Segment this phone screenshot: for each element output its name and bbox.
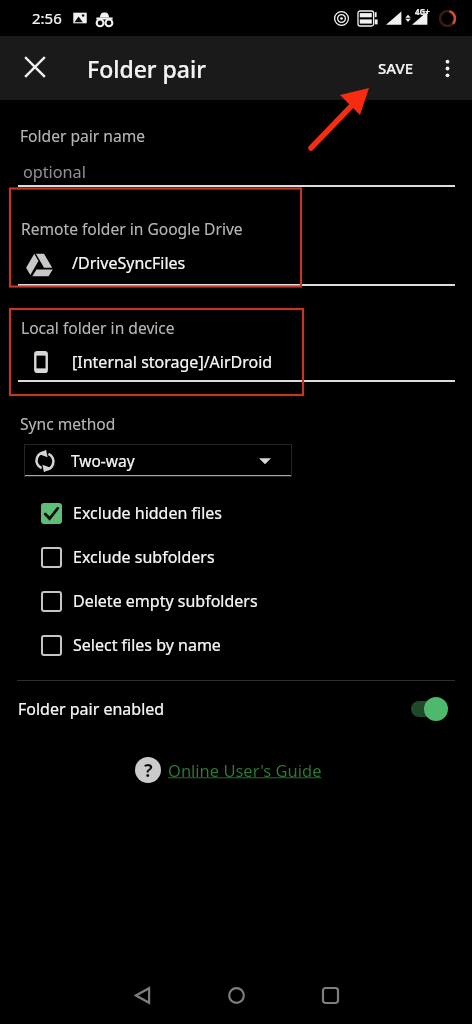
button[interactable]: More options: [422, 36, 472, 100]
staticText: Two-way: [71, 450, 135, 471]
button[interactable]: ?: [135, 755, 322, 785]
staticText: Folder pair: [87, 53, 206, 84]
staticText: optional: [23, 161, 86, 183]
button[interactable]: Select files by name: [0, 623, 472, 667]
staticText: Delete empty subfolders: [73, 590, 258, 612]
button[interactable]: Folder pair enabled: [0, 688, 472, 730]
staticText: Local folder in device: [21, 317, 175, 338]
staticText: [Internal storage]/AirDroid: [72, 351, 273, 373]
staticText: Online User's Guide: [168, 759, 322, 781]
button[interactable]: Recents: [302, 967, 358, 1023]
button[interactable]: Home: [208, 967, 264, 1023]
staticText: SAVE: [378, 58, 414, 78]
button[interactable]: Exclude subfolders: [0, 535, 472, 579]
staticText: 4G+: [415, 6, 430, 17]
button[interactable]: SAVE: [370, 36, 422, 100]
staticText: Sync method: [20, 413, 116, 434]
staticText: Exclude subfolders: [73, 546, 215, 568]
button[interactable]: Close: [0, 36, 70, 100]
button[interactable]: Delete empty subfolders: [0, 579, 472, 623]
staticText: Remote folder in Google Drive: [21, 218, 243, 239]
staticText: Folder pair name: [20, 125, 146, 146]
button[interactable]: [Internal storage]/AirDroid: [10, 344, 462, 380]
button[interactable]: Two-way: [24, 444, 292, 477]
button[interactable]: Back: [114, 967, 170, 1023]
button[interactable]: /DriveSyncFiles: [10, 244, 462, 282]
staticText: Folder pair enabled: [18, 698, 165, 720]
staticText: /DriveSyncFiles: [72, 252, 186, 274]
staticText: Select files by name: [73, 634, 221, 656]
staticText: 2:56: [32, 8, 62, 28]
staticText: ?: [144, 758, 153, 783]
staticText: Exclude hidden files: [73, 502, 222, 524]
button[interactable]: Exclude hidden files: [0, 491, 472, 535]
